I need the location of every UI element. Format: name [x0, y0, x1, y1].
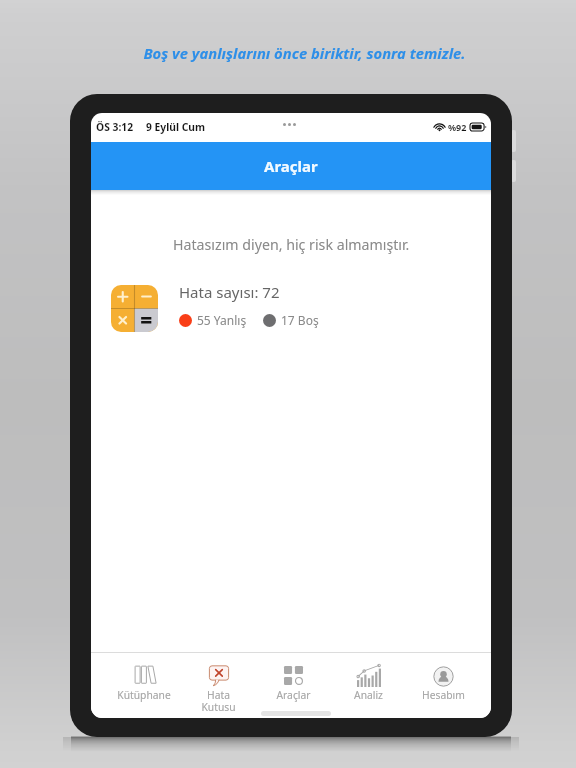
staticText: Hata sayısı: 72 — [179, 282, 280, 302]
button[interactable]: Hata Kutusu — [181, 653, 256, 718]
staticText: Hatasızım diyen, hiç risk almamıştır. — [173, 235, 410, 254]
staticText: Araçlar — [276, 688, 311, 702]
staticText: Hata Kutusu — [201, 688, 236, 714]
button[interactable]: Kütüphane — [106, 653, 181, 718]
staticText: Hesabım — [422, 688, 465, 702]
staticText: 9 Eylül Cum — [146, 120, 206, 134]
staticText: ÖS 3:12 — [96, 120, 134, 134]
staticText: 17 Boş — [281, 312, 319, 328]
staticText: Analiz — [354, 688, 383, 702]
staticText: Araçlar — [264, 156, 318, 176]
button[interactable]: Araçlar — [256, 653, 331, 718]
button[interactable]: Hesabım — [406, 653, 481, 718]
staticText: %92 — [448, 121, 467, 133]
staticText: 55 Yanlış — [197, 312, 247, 328]
staticText: Boş ve yanlışlarını önce biriktir, sonra… — [143, 43, 466, 63]
staticText: Kütüphane — [117, 688, 171, 702]
button[interactable]: Analiz — [331, 653, 406, 718]
